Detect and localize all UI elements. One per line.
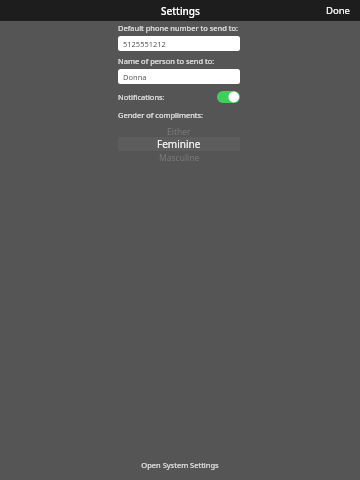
staticText: Either [167,126,191,136]
button[interactable]: Donna [118,69,240,84]
staticText: Default phone number to send to: [118,23,238,33]
button[interactable]: Done [316,1,360,20]
staticText: Name of person to send to: [118,56,215,66]
button[interactable]: Gender of compliments picker [118,126,240,162]
button[interactable]: Open System Settings [127,457,233,473]
button[interactable]: 5125551212 [118,36,240,51]
staticText: Notifications: [118,92,165,102]
staticText: Settings [161,4,200,18]
staticText: 5125551212 [123,39,166,49]
button[interactable]: Notifications toggle, on [217,91,240,103]
staticText: Open System Settings [141,460,219,470]
staticText: Masculine [159,152,200,162]
staticText: Donna [123,72,147,82]
staticText: Feminine [157,137,201,151]
staticText: Done [326,4,350,17]
staticText: Gender of compliments: [118,110,204,120]
